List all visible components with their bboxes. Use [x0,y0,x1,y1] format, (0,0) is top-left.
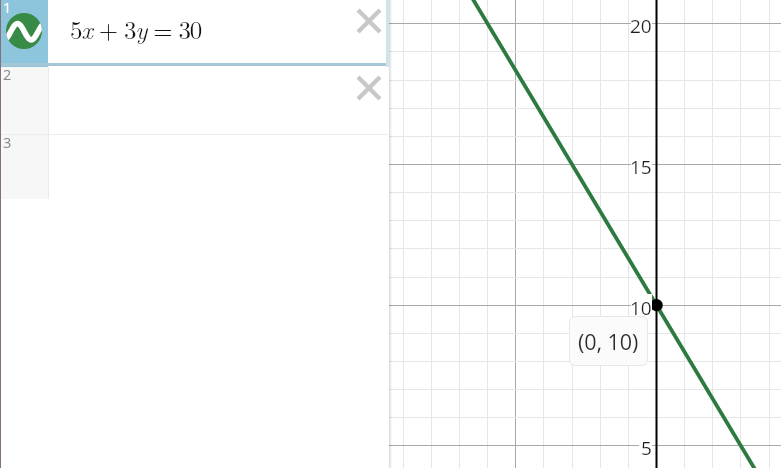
staticText: 5x + 3y = 30 [70,11,201,46]
staticText: 5 [641,435,652,458]
button[interactable]: Delete expression [354,6,384,36]
staticText: (0, 10) [578,327,639,356]
staticText: 20 [630,13,652,36]
staticText: 3 [3,133,12,153]
staticText: 1 [3,0,12,18]
button[interactable]: Line style [6,13,42,49]
staticText: 2 [3,65,12,85]
button[interactable]: Delete expression [354,73,384,103]
button[interactable]: 2 [0,67,389,135]
staticText: 10 [630,295,652,318]
button[interactable]: 1 [0,0,389,67]
button[interactable]: 3 [0,135,389,199]
staticText: 15 [630,154,652,177]
